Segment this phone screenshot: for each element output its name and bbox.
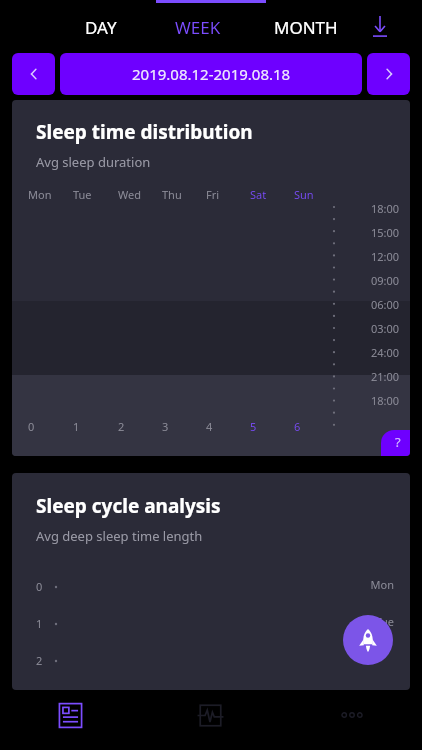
- staticText: 3: [162, 419, 169, 434]
- staticText: Mon: [28, 187, 52, 202]
- staticText: Sleep time distribution: [36, 119, 253, 145]
- staticText: 12:00: [371, 249, 400, 264]
- button[interactable]: More: [281, 691, 422, 739]
- button[interactable]: Reports: [0, 691, 140, 739]
- button[interactable]: Monitor: [140, 691, 281, 739]
- staticText: 4: [206, 419, 213, 434]
- staticText: Avg deep sleep time length: [36, 527, 203, 545]
- staticText: ?: [395, 433, 401, 451]
- staticText: 18:00: [371, 201, 400, 214]
- button[interactable]: WEEK: [143, 2, 253, 52]
- staticText: Sleep cycle analysis: [36, 493, 221, 519]
- button[interactable]: Next week: [367, 53, 410, 95]
- staticText: 06:00: [371, 297, 400, 312]
- staticText: Sat: [250, 187, 267, 202]
- button[interactable]: Launch: [343, 615, 393, 665]
- button[interactable]: 2019.08.12-2019.08.18: [60, 53, 362, 95]
- staticText: Thu: [162, 187, 182, 202]
- staticText: Tue: [73, 187, 92, 202]
- staticText: 03:00: [371, 321, 400, 336]
- staticText: 2: [118, 419, 125, 434]
- staticText: Mon: [12, 577, 394, 592]
- button[interactable]: DAY: [58, 2, 143, 52]
- button[interactable]: Help: [381, 430, 410, 456]
- staticText: 0: [28, 419, 35, 434]
- staticText: MONTH: [274, 16, 338, 39]
- staticText: DAY: [85, 16, 117, 39]
- staticText: 2: [36, 653, 43, 668]
- staticText: 09:00: [371, 273, 400, 288]
- staticText: Avg sleep duration: [36, 153, 151, 171]
- staticText: 21:00: [371, 369, 400, 384]
- button[interactable]: Download: [358, 5, 402, 49]
- button[interactable]: Previous week: [12, 53, 55, 95]
- staticText: 0: [36, 579, 43, 594]
- staticText: Tue: [12, 614, 394, 629]
- staticText: 1: [36, 616, 43, 631]
- staticText: 5: [250, 419, 257, 434]
- staticText: WEEK: [175, 16, 221, 39]
- staticText: Sun: [294, 187, 314, 202]
- staticText: 6: [294, 419, 301, 434]
- staticText: Wed: [118, 187, 141, 202]
- staticText: 24:00: [371, 345, 400, 360]
- staticText: 15:00: [371, 225, 400, 240]
- staticText: 1: [73, 419, 80, 434]
- staticText: Fri: [206, 187, 220, 202]
- staticText: 18:00: [371, 393, 400, 408]
- staticText: 2019.08.12-2019.08.18: [132, 64, 291, 84]
- button[interactable]: MONTH: [253, 2, 358, 52]
